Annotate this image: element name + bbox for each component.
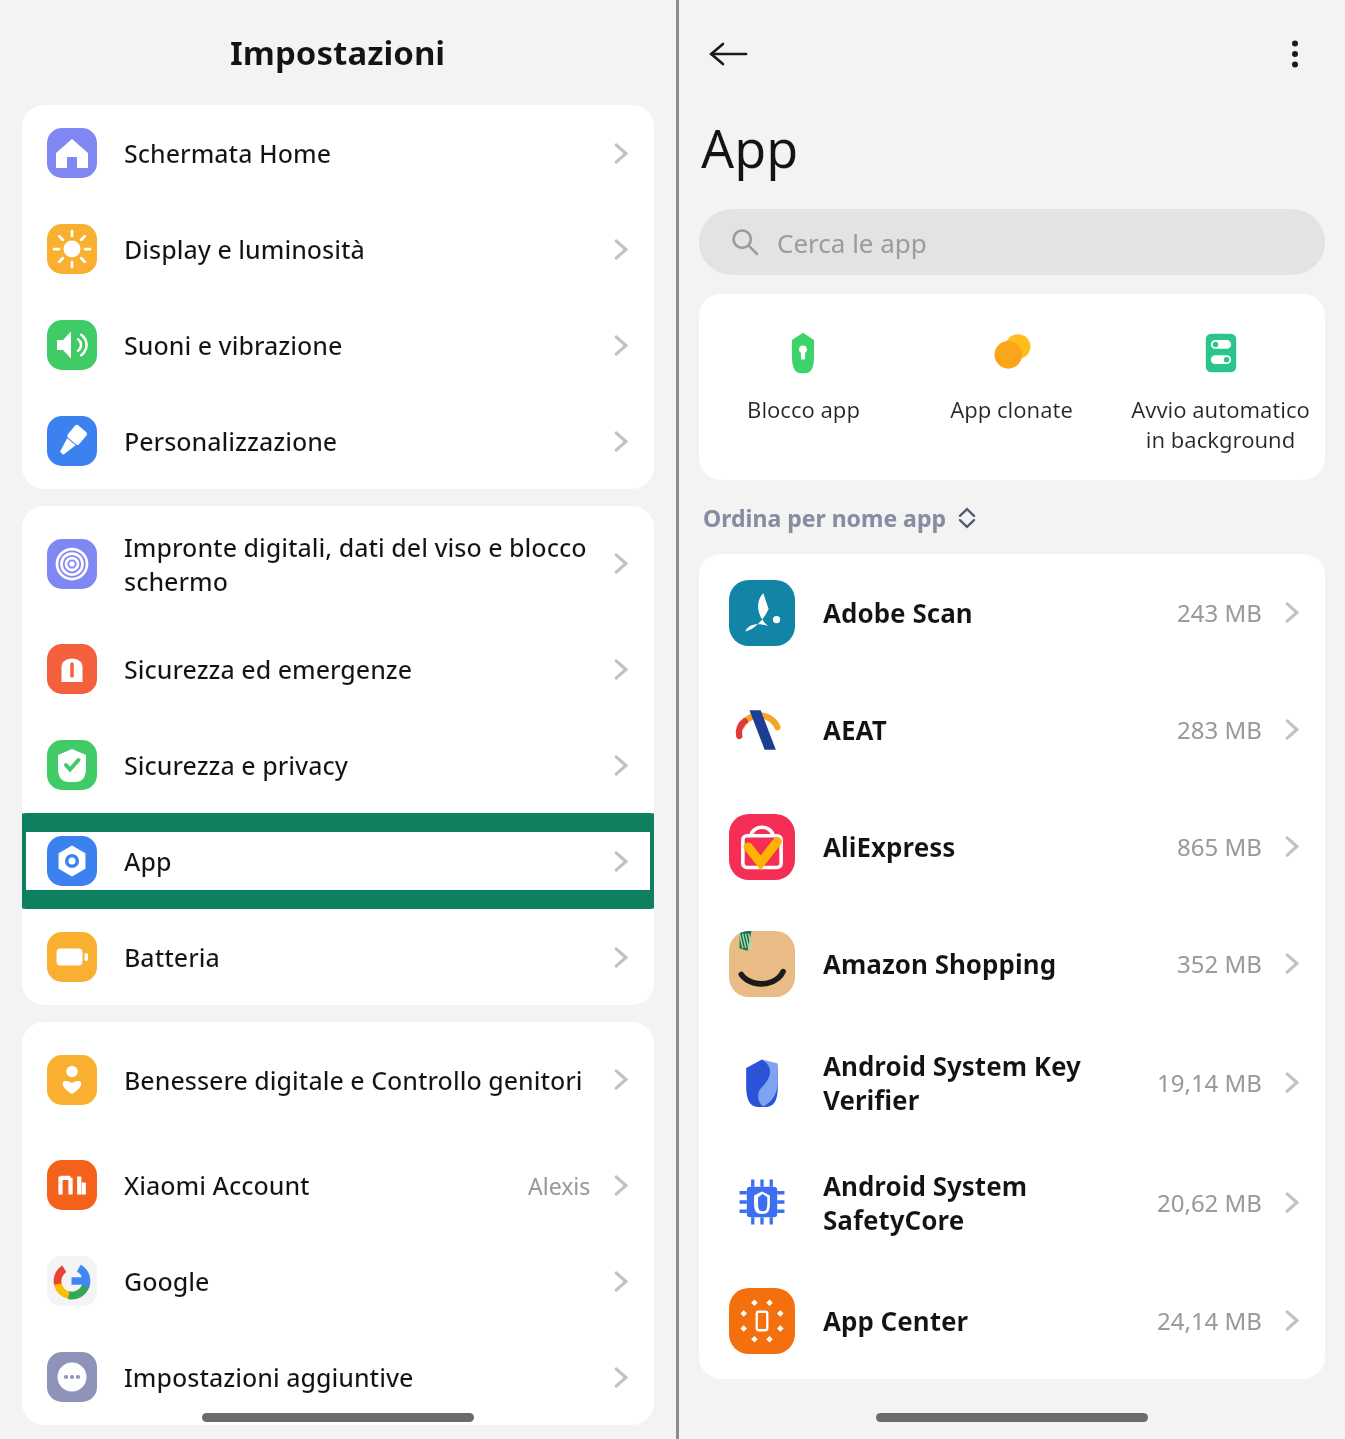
staticText: 352 MB	[1177, 947, 1262, 980]
staticText: 865 MB	[1177, 830, 1262, 863]
staticText: Android System Key Verifier	[823, 1048, 1143, 1117]
staticText: Suoni e vibrazione	[124, 328, 597, 362]
staticText: AEAT	[823, 712, 1163, 747]
button[interactable]: Blocco app	[699, 294, 907, 480]
staticText: Adobe Scan	[823, 595, 1163, 630]
button[interactable]: More options	[1269, 28, 1321, 80]
button[interactable]: Schermata Home	[22, 105, 654, 201]
button[interactable]: Benessere digitale e Controllo genitori	[22, 1022, 654, 1137]
staticText: Google	[124, 1264, 597, 1298]
staticText: Display e luminosità	[124, 232, 597, 266]
staticText: App	[124, 844, 597, 878]
staticText: Xiaomi Account	[124, 1168, 518, 1202]
staticText: App Center	[823, 1303, 1143, 1338]
button[interactable]: Ordina per nome app	[703, 502, 978, 533]
staticText: Personalizzazione	[124, 424, 597, 458]
staticText: Ordina per nome app	[703, 502, 946, 533]
staticText: 24,14 MB	[1157, 1304, 1262, 1337]
button[interactable]: Android System Key Verifier	[699, 1022, 1325, 1142]
button[interactable]: Amazon Shopping	[699, 905, 1325, 1022]
staticText: App	[701, 112, 799, 183]
staticText: 19,14 MB	[1157, 1066, 1262, 1099]
button[interactable]: Impostazioni aggiuntive	[22, 1329, 654, 1425]
button[interactable]: Back	[699, 25, 757, 83]
staticText: App clonate	[950, 394, 1073, 424]
button[interactable]: Sicurezza ed emergenze	[22, 621, 654, 717]
button[interactable]: Adobe Scan	[699, 554, 1325, 671]
staticText: 243 MB	[1177, 596, 1262, 629]
staticText: Impostazioni aggiuntive	[124, 1360, 597, 1394]
button[interactable]: Google	[22, 1233, 654, 1329]
button[interactable]: Avvio automatico in background	[1116, 294, 1325, 480]
button[interactable]: Batteria	[22, 909, 654, 1005]
button[interactable]: Android System SafetyCore	[699, 1142, 1325, 1262]
button[interactable]: AEAT	[699, 671, 1325, 788]
staticText: Impronte digitali, dati del viso e blocc…	[124, 530, 597, 598]
button[interactable]: App clonate	[907, 294, 1116, 480]
staticText: Impostazioni	[230, 30, 446, 75]
button[interactable]: Cerca le app	[699, 209, 1325, 275]
staticText: AliExpress	[823, 829, 1163, 864]
staticText: Sicurezza ed emergenze	[124, 652, 597, 686]
button[interactable]: Xiaomi Account	[22, 1137, 654, 1233]
staticText: Amazon Shopping	[823, 946, 1163, 981]
staticText: Benessere digitale e Controllo genitori	[124, 1063, 597, 1097]
button[interactable]: Personalizzazione	[22, 393, 654, 489]
button[interactable]: Impronte digitali, dati del viso e blocc…	[22, 506, 654, 621]
staticText: 20,62 MB	[1157, 1186, 1262, 1219]
button[interactable]: App	[22, 813, 654, 909]
staticText: Alexis	[528, 1170, 591, 1201]
staticText: Batteria	[124, 940, 597, 974]
staticText: Blocco app	[747, 394, 860, 424]
staticText: Avvio automatico in background	[1131, 394, 1310, 454]
button[interactable]: AliExpress	[699, 788, 1325, 905]
staticText: Cerca le app	[777, 225, 927, 260]
staticText: 283 MB	[1177, 713, 1262, 746]
button[interactable]: Display e luminosità	[22, 201, 654, 297]
staticText: Sicurezza e privacy	[124, 748, 597, 782]
button[interactable]: Suoni e vibrazione	[22, 297, 654, 393]
staticText: Schermata Home	[124, 136, 597, 170]
button[interactable]: App Center	[699, 1262, 1325, 1379]
staticText: Android System SafetyCore	[823, 1168, 1143, 1237]
button[interactable]: Sicurezza e privacy	[22, 717, 654, 813]
